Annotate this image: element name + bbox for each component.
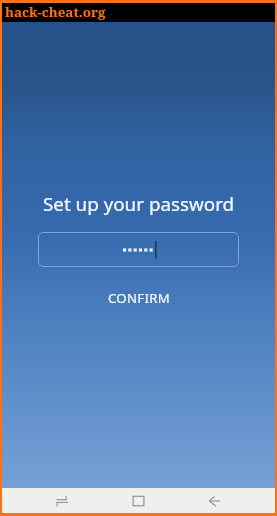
button[interactable]: CONFIRM: [94, 283, 184, 313]
button[interactable]: Recent apps: [53, 488, 71, 513]
staticText: Set up your password: [43, 191, 235, 217]
button[interactable]: Password field: [38, 232, 239, 267]
button[interactable]: Back: [205, 488, 223, 513]
staticText: hack-cheat.org: [5, 3, 106, 21]
staticText: CONFIRM: [108, 289, 170, 307]
button[interactable]: Home: [129, 488, 147, 513]
